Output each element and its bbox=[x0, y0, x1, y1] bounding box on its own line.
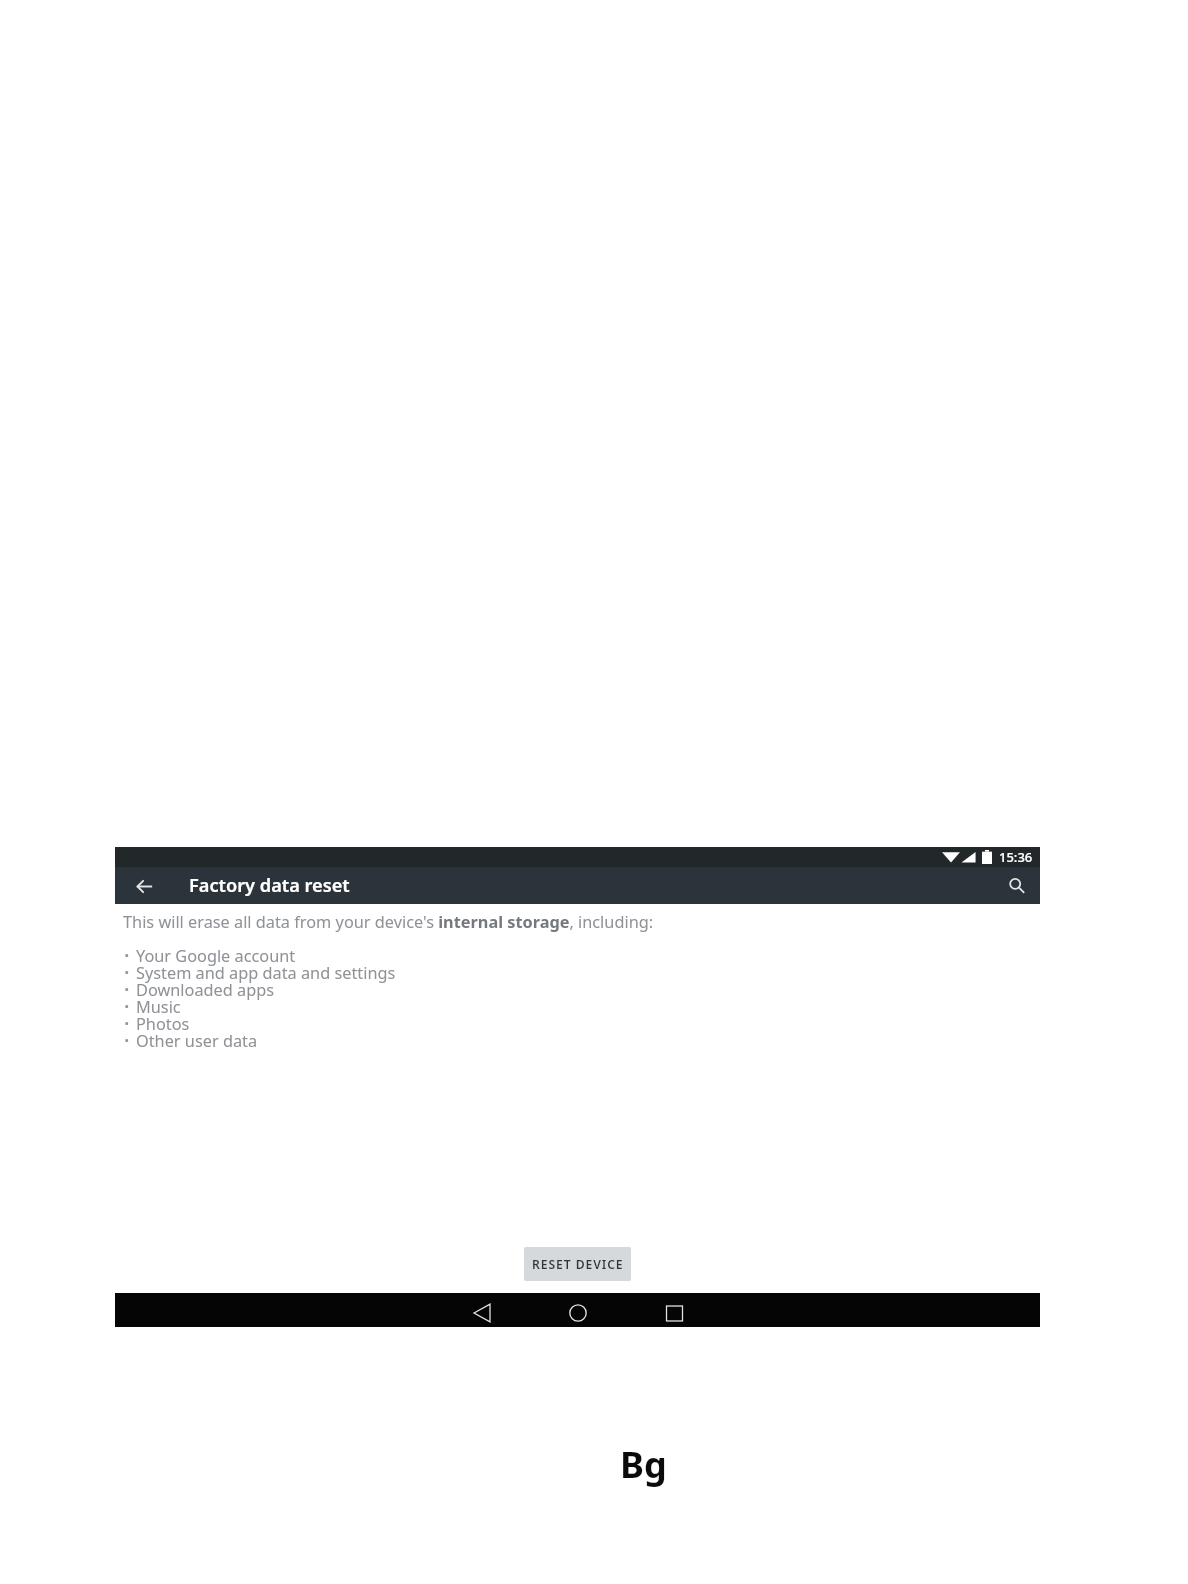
staticText: Factory data reset bbox=[189, 873, 350, 898]
button[interactable]: Back bbox=[434, 1293, 530, 1327]
button[interactable]: Recent apps bbox=[626, 1293, 722, 1327]
button[interactable]: RESET DEVICE bbox=[524, 1247, 631, 1281]
button[interactable]: Search bbox=[999, 868, 1035, 904]
button[interactable]: Back bbox=[126, 868, 162, 904]
staticText: RESET DEVICE bbox=[532, 1256, 624, 1273]
staticText: 15:36 bbox=[999, 848, 1033, 866]
button[interactable]: Home bbox=[530, 1293, 626, 1327]
staticText: Bg bbox=[620, 1440, 667, 1489]
staticText: Your Google account System and app data … bbox=[136, 945, 396, 1052]
staticText: This will erase all data from your devic… bbox=[123, 911, 654, 933]
